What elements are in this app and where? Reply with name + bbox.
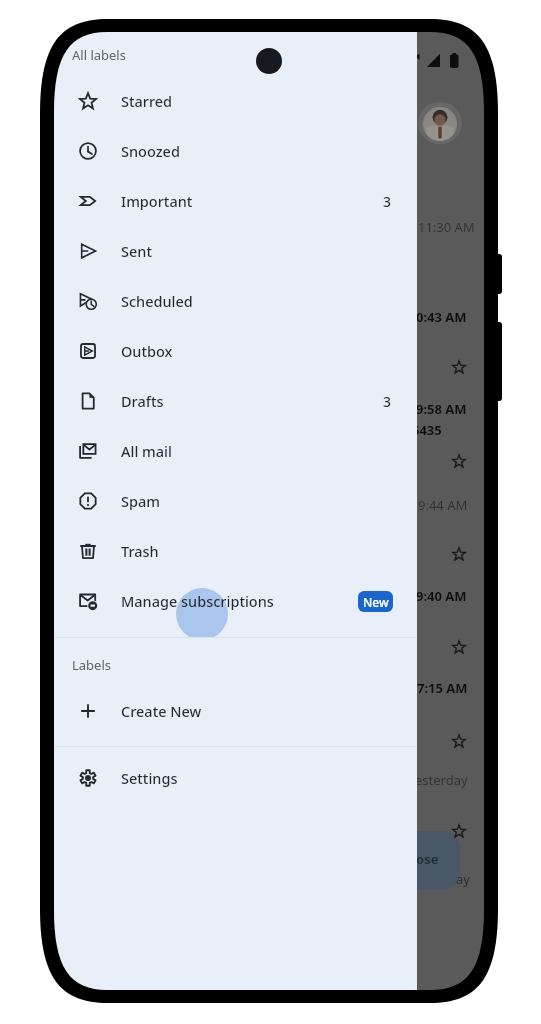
staticText: All mail [121,441,172,461]
staticText: Create New [121,701,202,721]
staticText: Sent [121,241,152,261]
staticText: Snoozed [121,141,180,161]
staticText: Spam [121,491,160,511]
button[interactable]: Important [54,176,417,226]
button[interactable]: All mail [54,426,417,476]
staticText: 0:43 AM [416,308,467,326]
button[interactable]: Spam [54,476,417,526]
button[interactable]: Settings [54,753,417,803]
staticText: 5435 [412,421,442,439]
staticText: 9:58 AM [416,400,467,418]
staticText: 9:40 AM [416,587,467,605]
staticText: ose [416,850,439,868]
staticText: Labels [72,656,112,674]
button[interactable]: Manage subscriptions [54,576,417,626]
staticText: Trash [121,541,159,561]
staticText: Important [121,191,193,211]
staticText: 11:30 AM [418,218,475,236]
staticText: Drafts [121,391,164,411]
other: Starred [79,92,97,110]
staticText: 9:44 AM [418,496,468,514]
staticText: 3 [383,392,392,411]
button[interactable]: Drafts [54,376,417,426]
staticText: Outbox [121,341,173,361]
staticText: Scheduled [121,291,193,311]
button[interactable]: Sent [54,226,417,276]
button[interactable]: Starred [54,76,417,126]
staticText: esterday [415,771,468,789]
staticText: 3 [383,192,392,211]
staticText: All labels [72,46,126,64]
staticText: Starred [121,91,173,111]
staticText: Settings [121,768,178,788]
button[interactable]: Scheduled [54,276,417,326]
button[interactable]: Create New [54,686,417,736]
staticText: ay [456,870,470,888]
staticText: 7:15 AM [417,679,468,697]
button[interactable]: Snoozed [54,126,417,176]
button[interactable]: Outbox [54,326,417,376]
button[interactable]: Trash [54,526,417,576]
staticText: New [363,594,389,610]
staticText: Manage subscriptions [121,591,274,611]
